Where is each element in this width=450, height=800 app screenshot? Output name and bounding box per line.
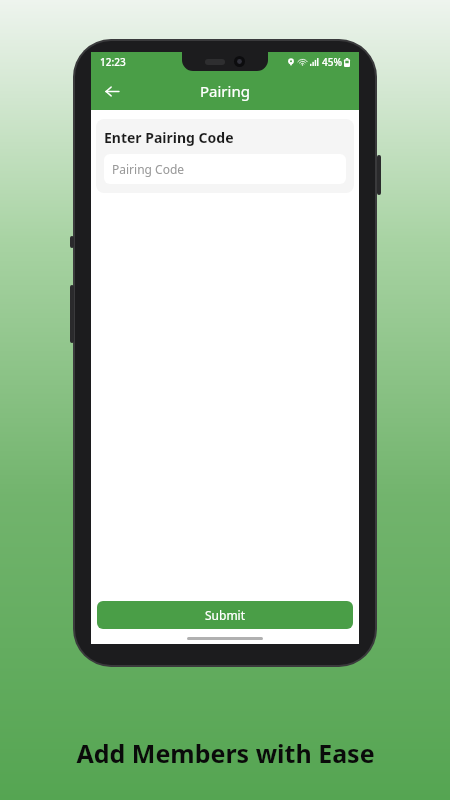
- staticText: Pairing: [200, 81, 250, 101]
- staticText: Submit: [205, 607, 246, 623]
- button[interactable]: Back: [95, 74, 129, 108]
- staticText: Pairing Code: [112, 161, 185, 177]
- button[interactable]: Submit: [97, 601, 353, 629]
- staticText: Enter Pairing Code: [104, 128, 234, 147]
- button[interactable]: Pairing Code: [104, 154, 346, 184]
- staticText: 45%: [322, 55, 342, 69]
- staticText: 12:23: [100, 55, 126, 69]
- staticText: Add Members with Ease: [76, 736, 375, 770]
